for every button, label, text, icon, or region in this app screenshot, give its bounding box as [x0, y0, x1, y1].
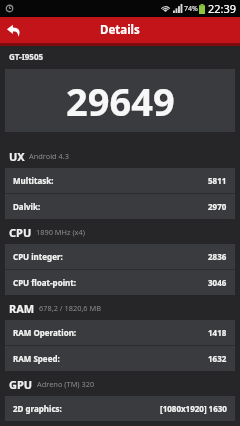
button[interactable]: RAM Operation:	[5, 320, 235, 345]
button[interactable]: CPU integer:	[5, 244, 235, 269]
staticText: RAM Operation:	[13, 327, 77, 338]
staticText: 74%	[184, 4, 198, 14]
staticText: 29649	[66, 75, 175, 127]
staticText: 22:39	[208, 1, 237, 16]
staticText: GPU	[9, 377, 33, 392]
staticText: Dalvik:	[13, 201, 41, 212]
staticText: RAM	[9, 301, 35, 316]
staticText: CPU integer:	[13, 251, 63, 262]
staticText: UX	[9, 149, 25, 164]
staticText: 5811	[208, 175, 227, 186]
button[interactable]: Multitask:	[5, 168, 235, 193]
staticText: 2836	[208, 251, 227, 262]
button[interactable]: CPU float-point:	[5, 270, 235, 295]
staticText: 2970	[208, 201, 227, 212]
staticText: GT-I9505	[9, 51, 44, 62]
button[interactable]: RAM Speed:	[5, 346, 235, 371]
staticText: Multitask:	[13, 175, 54, 186]
staticText: 1418	[208, 327, 227, 338]
staticText: 1632	[208, 353, 227, 364]
staticText: CPU	[9, 225, 32, 240]
staticText: CPU float-point:	[13, 277, 76, 288]
staticText: RAM Speed:	[13, 353, 60, 364]
staticText: Android 4.3	[29, 151, 70, 161]
staticText: [1080x1920] 1630	[160, 403, 227, 414]
staticText: 1890 MHz (x4)	[36, 227, 85, 237]
staticText: Details	[100, 22, 140, 38]
button[interactable]: Dalvik:	[5, 194, 235, 219]
staticText: 3046	[208, 277, 227, 288]
staticText: Adreno (TM) 320	[37, 379, 95, 389]
staticText: 678,2 / 1820,6 MB	[39, 303, 102, 313]
button[interactable]: Back	[0, 17, 26, 43]
staticText: 2D graphics:	[13, 403, 62, 414]
button[interactable]: 2D graphics:	[5, 396, 235, 421]
